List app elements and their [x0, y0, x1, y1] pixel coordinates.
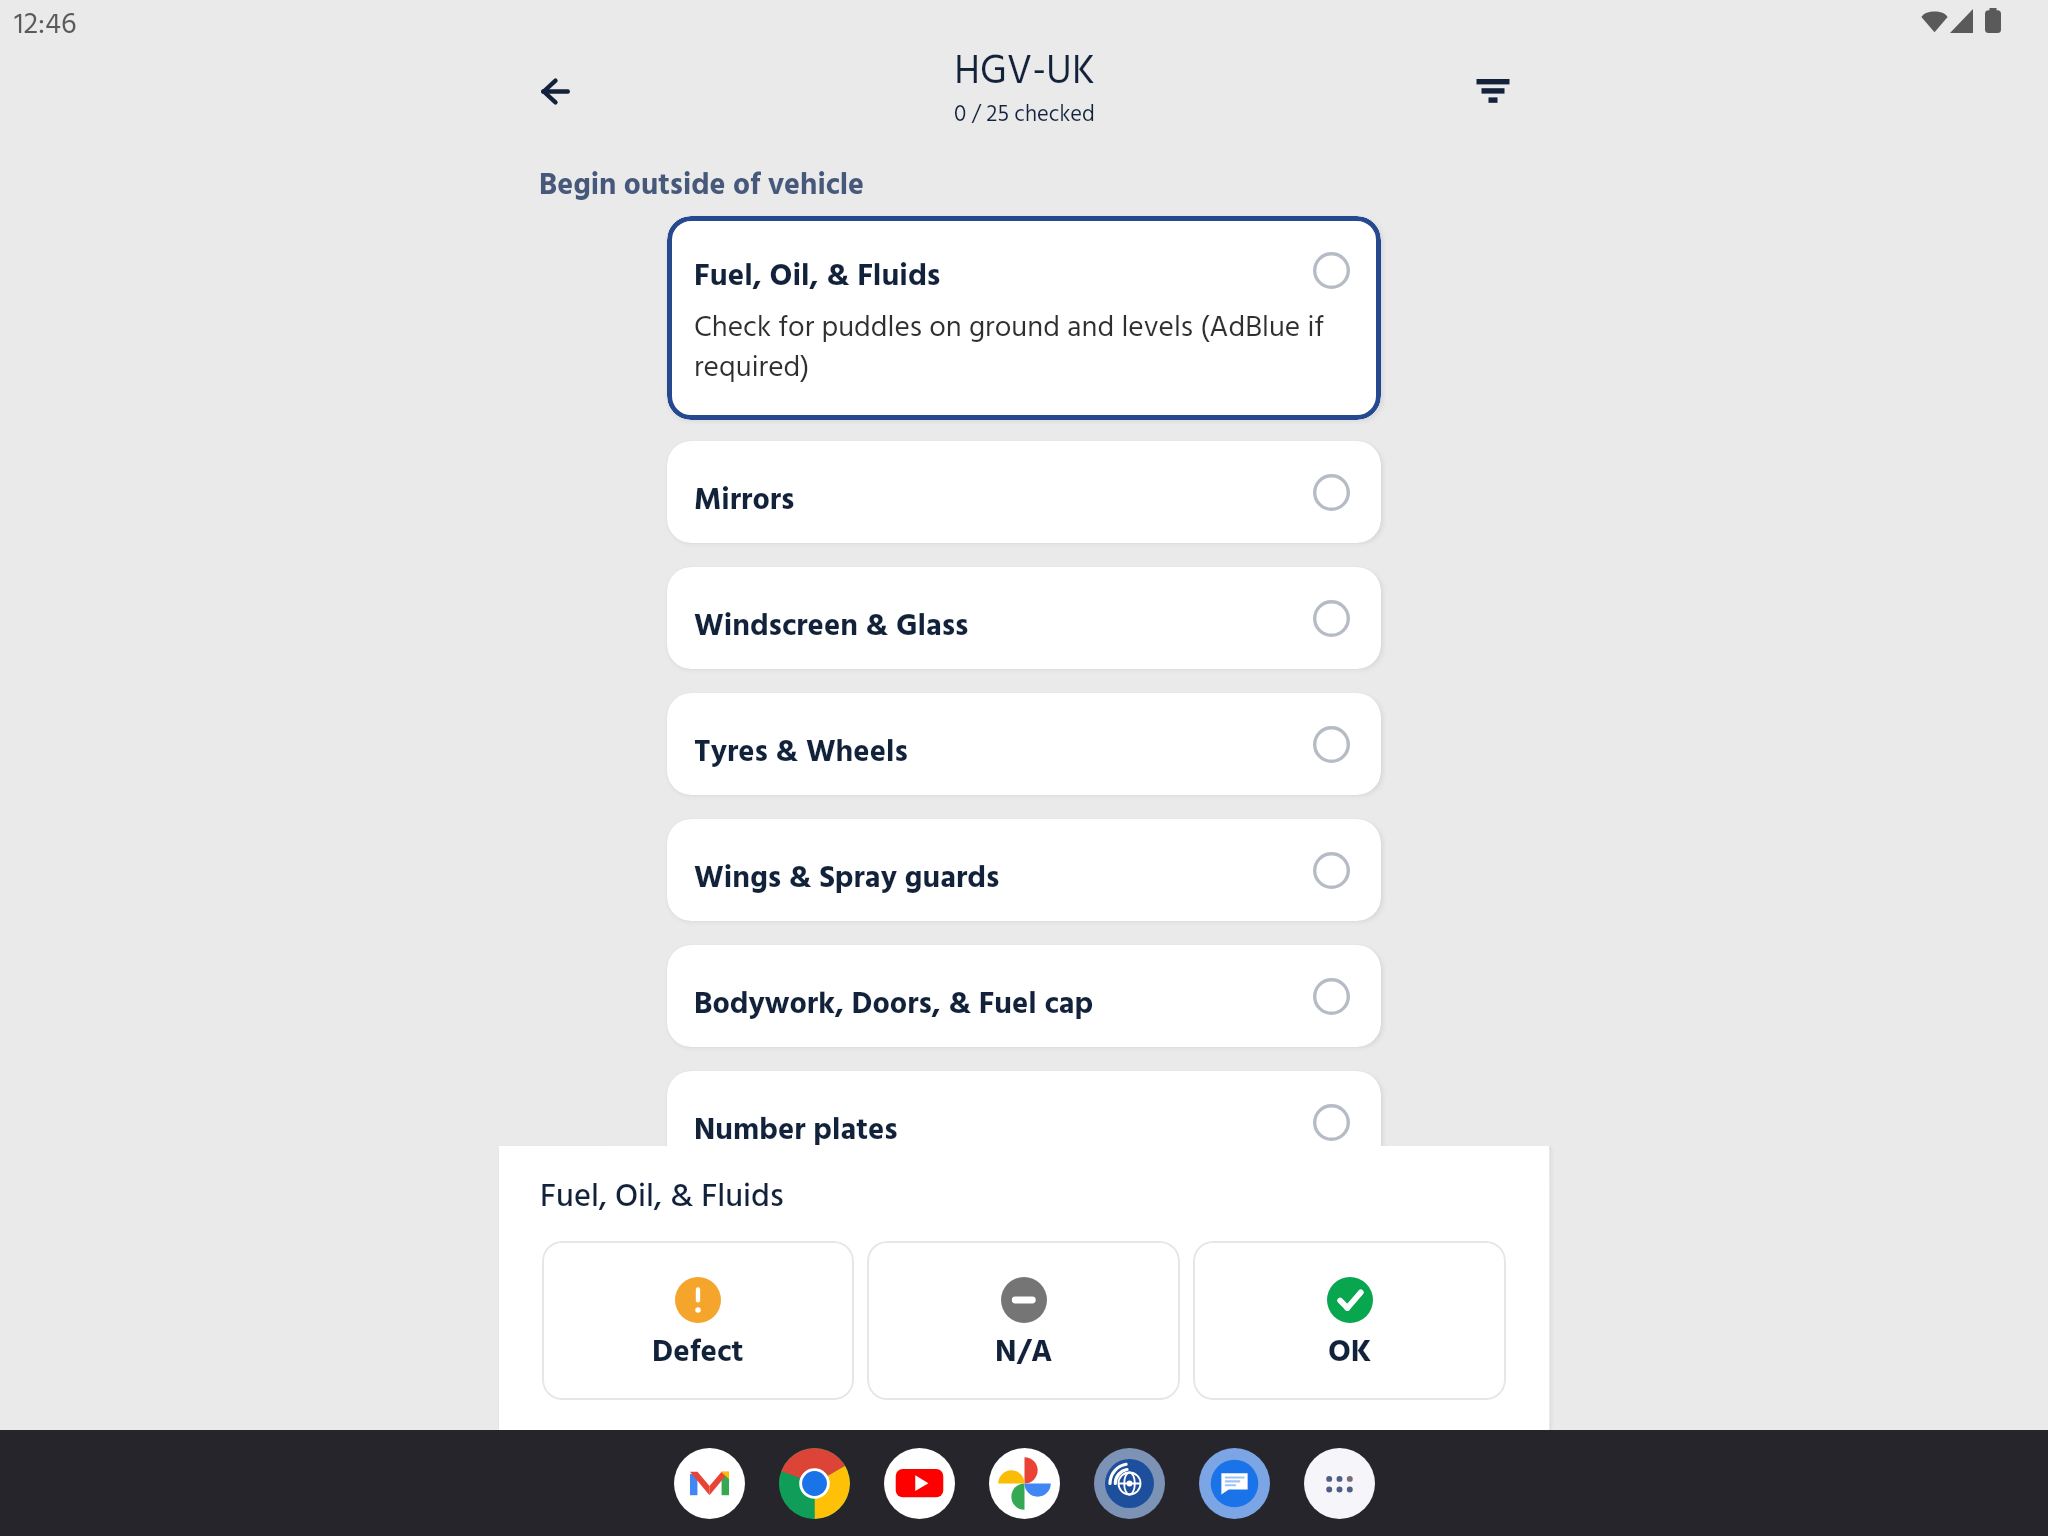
button[interactable]: Wings & Spray guards: [667, 819, 1381, 921]
button[interactable]: Defect: [542, 1241, 854, 1400]
staticText: Tyres & Wheels: [694, 729, 908, 778]
button[interactable]: messages: [1199, 1448, 1270, 1519]
staticText: HGV-UK: [954, 41, 1095, 105]
staticText: Number plates: [694, 1107, 898, 1156]
button[interactable]: Back: [523, 59, 587, 123]
button[interactable]: Number plates: [667, 1071, 1381, 1173]
staticText: OK: [1328, 1328, 1372, 1378]
button[interactable]: globe: [1094, 1448, 1165, 1519]
button[interactable]: chrome: [779, 1448, 850, 1519]
button[interactable]: youtube: [884, 1448, 955, 1519]
staticText: Mirrors: [694, 477, 795, 526]
button[interactable]: Bodywork, Doors, & Fuel cap: [667, 945, 1381, 1047]
staticText: Windscreen & Glass: [694, 603, 969, 652]
staticText: Begin outside of vehicle: [539, 162, 865, 210]
button[interactable]: photos: [989, 1448, 1060, 1519]
button[interactable]: Windscreen & Glass: [667, 567, 1381, 669]
staticText: Wings & Spray guards: [694, 855, 1000, 904]
button[interactable]: Filter: [1461, 59, 1525, 123]
button[interactable]: gmail: [674, 1448, 745, 1519]
button[interactable]: OK: [1193, 1241, 1506, 1400]
staticText: Fuel, Oil, & Fluids: [540, 1172, 784, 1224]
button[interactable]: N/A: [867, 1241, 1180, 1400]
staticText: 0 / 25 checked: [954, 97, 1095, 133]
button[interactable]: Tyres & Wheels: [667, 693, 1381, 795]
staticText: Bodywork, Doors, & Fuel cap: [694, 981, 1094, 1030]
staticText: 12:46: [14, 2, 77, 49]
staticText: N/A: [995, 1328, 1053, 1378]
button[interactable]: Mirrors: [667, 441, 1381, 543]
button[interactable]: apps: [1304, 1448, 1375, 1519]
button[interactable]: Fuel, Oil, & Fluids: [667, 216, 1381, 420]
staticText: Fuel, Oil, & Fluids: [694, 252, 941, 302]
staticText: Defect: [652, 1328, 744, 1378]
staticText: Check for puddles on ground and levels (…: [694, 305, 1339, 392]
